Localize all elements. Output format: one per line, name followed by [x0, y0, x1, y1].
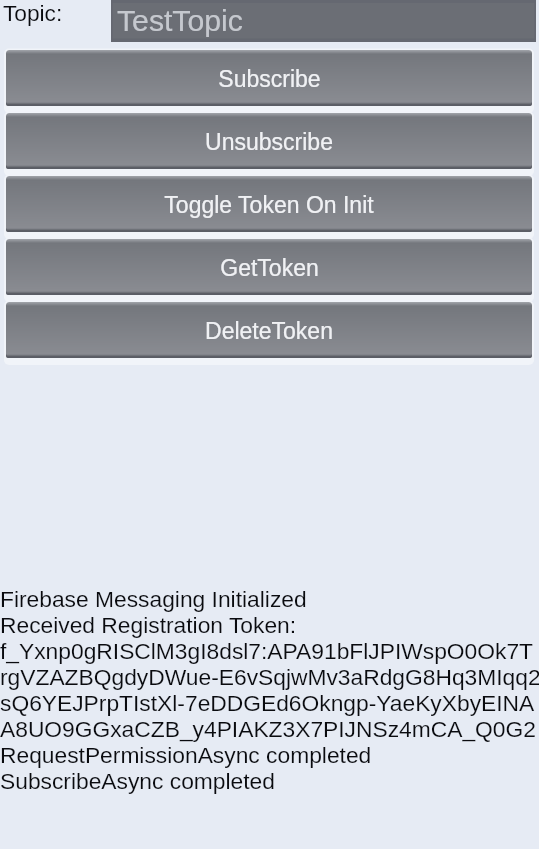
staticText: GetToken [220, 255, 319, 281]
button[interactable]: TestTopic [111, 0, 536, 42]
button[interactable]: GetToken [6, 239, 532, 295]
button[interactable]: Subscribe [6, 50, 532, 106]
staticText: Subscribe [218, 66, 321, 92]
staticText: DeleteToken [205, 318, 333, 344]
staticText: Firebase Messaging Initialized Received … [0, 586, 539, 794]
staticText: TestTopic [117, 4, 243, 38]
staticText: Toggle Token On Init [164, 192, 374, 218]
button[interactable]: DeleteToken [6, 302, 532, 358]
button[interactable]: Toggle Token On Init [6, 176, 532, 232]
button[interactable]: Unsubscribe [6, 113, 532, 169]
staticText: Topic: [3, 0, 63, 25]
staticText: Unsubscribe [205, 129, 333, 155]
